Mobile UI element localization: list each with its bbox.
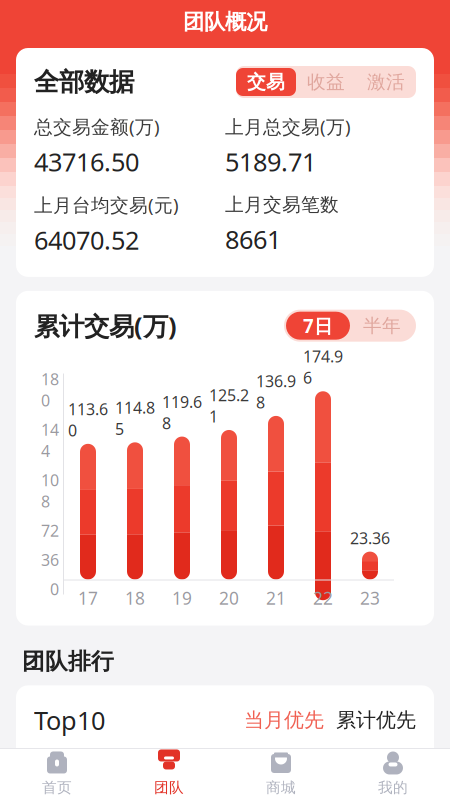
staticText: 8661 xyxy=(225,222,281,256)
staticText: 商城 xyxy=(266,778,296,796)
staticText: 144 xyxy=(41,419,59,461)
staticText: 19 xyxy=(172,586,192,609)
button[interactable]: 激活 xyxy=(356,68,416,96)
staticText: 团队 xyxy=(154,778,184,796)
staticText: 团队概况 xyxy=(183,9,267,35)
button[interactable]: 累计优先 xyxy=(336,708,416,732)
staticText: 激活 xyxy=(367,70,405,93)
staticText: 119.68 xyxy=(162,391,202,434)
staticText: 我的 xyxy=(378,778,408,796)
button[interactable]: 商城 xyxy=(225,748,337,800)
staticText: 0 xyxy=(50,578,59,600)
staticText: 64070.52 xyxy=(34,223,139,257)
staticText: 全部数据 xyxy=(34,66,134,97)
button[interactable]: 首页 xyxy=(1,748,113,800)
staticText: 36 xyxy=(41,549,59,570)
staticText: 22 xyxy=(313,586,333,609)
button[interactable]: 当月优先 xyxy=(244,708,324,732)
staticText: 上月总交易(万) xyxy=(225,114,351,139)
staticText: 17 xyxy=(78,586,98,609)
staticText: 23 xyxy=(360,586,380,609)
staticText: 团队排行 xyxy=(22,647,114,675)
staticText: 108 xyxy=(41,469,59,512)
staticText: 5189.71 xyxy=(225,145,316,178)
staticText: 114.85 xyxy=(115,397,155,439)
staticText: 总交易金额(万) xyxy=(34,114,160,139)
staticText: 180 xyxy=(41,368,59,411)
staticText: 113.60 xyxy=(68,398,108,441)
staticText: Top10 xyxy=(34,703,105,737)
staticText: 7日 xyxy=(303,313,333,338)
staticText: 我的本期排名： xyxy=(78,763,218,787)
staticText: 收益 xyxy=(307,70,345,93)
button[interactable]: 交易 xyxy=(236,68,296,96)
button[interactable]: 我的本期排名： xyxy=(30,753,420,797)
button[interactable]: 7日 xyxy=(286,312,350,340)
staticText: 125.21 xyxy=(209,384,249,427)
staticText: 交易 xyxy=(247,70,285,93)
button[interactable]: 半年 xyxy=(350,312,414,340)
staticText: 72 xyxy=(41,520,59,541)
staticText: 20 xyxy=(219,586,239,609)
staticText: 43716.50 xyxy=(34,145,139,178)
staticText: 174.96 xyxy=(303,346,343,388)
button[interactable]: 我的 xyxy=(337,748,449,800)
staticText: 累计优先 xyxy=(336,708,416,732)
staticText: 半年 xyxy=(363,314,401,337)
staticText: 1名 xyxy=(373,761,406,789)
button[interactable]: 收益 xyxy=(296,68,356,96)
staticText: 21 xyxy=(266,586,286,609)
staticText: 136.98 xyxy=(256,370,296,413)
staticText: 上月交易笔数 xyxy=(225,193,339,216)
staticText: 首页 xyxy=(42,778,72,796)
staticText: 23.36 xyxy=(350,527,390,549)
button[interactable]: 团队 xyxy=(113,748,225,800)
staticText: 当月优先 xyxy=(244,708,324,732)
staticText: 累计交易(万) xyxy=(34,309,177,342)
staticText: 18 xyxy=(125,586,145,609)
staticText: 上月台均交易(元) xyxy=(34,192,179,217)
